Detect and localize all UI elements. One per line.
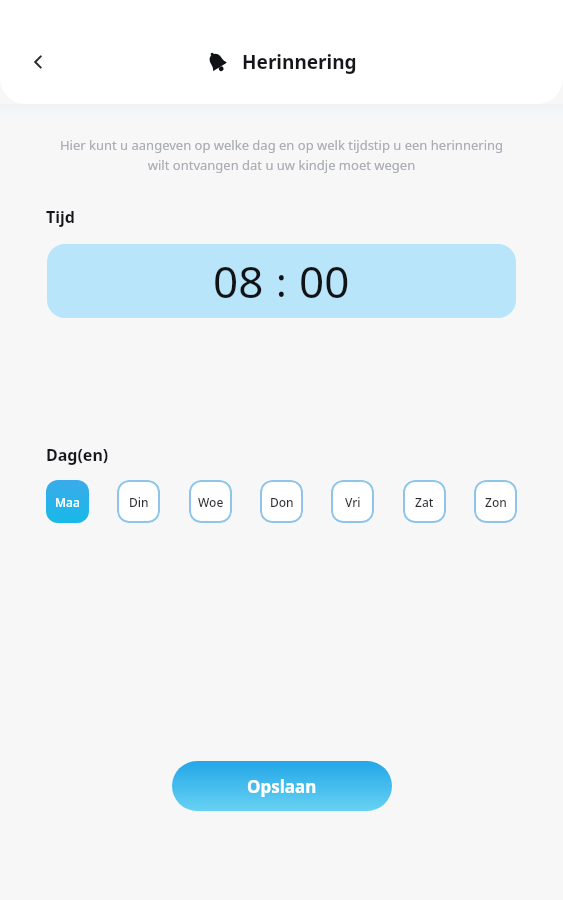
staticText: Vri bbox=[345, 494, 361, 510]
staticText: Woe bbox=[198, 494, 224, 510]
staticText: Don bbox=[270, 494, 294, 510]
staticText: 08 bbox=[213, 251, 264, 311]
button[interactable]: Opslaan bbox=[172, 761, 392, 811]
staticText: Zat bbox=[415, 494, 434, 510]
button[interactable]: Maa bbox=[46, 480, 89, 523]
staticText: Zon bbox=[485, 494, 507, 510]
staticText: 00 bbox=[299, 251, 350, 311]
button[interactable]: Din bbox=[117, 480, 160, 523]
button[interactable]: Woe bbox=[189, 480, 232, 523]
staticText: Opslaan bbox=[247, 775, 317, 798]
button[interactable]: Don bbox=[260, 480, 303, 523]
button[interactable]: 08 bbox=[47, 244, 516, 318]
staticText: : bbox=[276, 254, 287, 308]
button[interactable]: Zat bbox=[403, 480, 446, 523]
staticText: Tijd bbox=[46, 206, 75, 228]
button[interactable]: Zon bbox=[474, 480, 517, 523]
button[interactable]: Back bbox=[14, 38, 62, 86]
button[interactable]: Vri bbox=[331, 480, 374, 523]
staticText: Maa bbox=[55, 494, 80, 510]
staticText: Dag(en) bbox=[46, 444, 109, 466]
staticText: Hier kunt u aangeven op welke dag en op … bbox=[30, 136, 533, 174]
staticText: Herinnering bbox=[242, 49, 357, 75]
staticText: Din bbox=[129, 494, 149, 510]
